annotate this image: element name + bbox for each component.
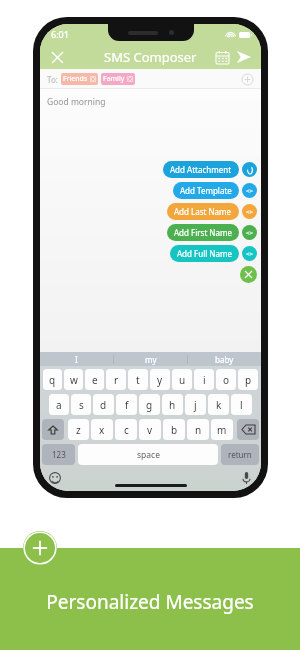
button[interactable]: g — [139, 394, 160, 415]
button[interactable]: y — [150, 369, 170, 390]
button[interactable]: space — [78, 444, 218, 465]
button[interactable]: 123 — [42, 444, 75, 465]
button[interactable]: baby — [188, 352, 261, 366]
button[interactable]: Add — [23, 531, 57, 565]
staticText: j — [194, 398, 197, 412]
button[interactable]: f — [116, 394, 137, 415]
staticText: Friends — [63, 74, 88, 84]
staticText: w — [70, 373, 78, 387]
button[interactable]: s — [71, 394, 91, 415]
staticText: SMS Composer — [104, 48, 197, 66]
button[interactable]: Add Attachment — [163, 161, 257, 178]
button[interactable]: Schedule — [211, 46, 233, 68]
button[interactable]: Family — [103, 74, 133, 84]
button[interactable]: j — [185, 394, 206, 415]
button[interactable]: i — [194, 369, 214, 390]
button[interactable]: v — [139, 419, 161, 440]
staticText: z — [76, 423, 81, 437]
button[interactable]: a — [49, 394, 69, 415]
staticText: d — [100, 398, 107, 412]
button[interactable]: k — [208, 394, 229, 415]
staticText: g — [146, 398, 153, 412]
button[interactable]: r — [106, 369, 126, 390]
staticText: my — [145, 354, 157, 365]
staticText: k — [216, 398, 222, 412]
button[interactable]: n — [187, 419, 209, 440]
staticText: baby — [215, 354, 234, 365]
staticText: q — [49, 373, 56, 387]
button[interactable]: t — [128, 369, 148, 390]
staticText: s — [79, 398, 84, 412]
staticText: v — [147, 423, 153, 437]
button[interactable]: Emoji — [47, 470, 63, 486]
button[interactable]: Personalized Messages — [0, 548, 300, 650]
button[interactable]: h — [162, 394, 183, 415]
staticText: r — [114, 373, 119, 387]
button[interactable]: e — [85, 369, 104, 390]
staticText: To: — [47, 74, 58, 85]
button[interactable]: return — [221, 444, 259, 465]
button[interactable]: Key — [237, 419, 259, 440]
button[interactable]: p — [238, 369, 258, 390]
button[interactable]: o — [216, 369, 236, 390]
button[interactable]: Close — [46, 46, 68, 68]
button[interactable]: l — [231, 394, 252, 415]
button[interactable]: my — [114, 352, 187, 366]
button[interactable]: Add Template — [173, 182, 257, 199]
staticText: h — [169, 398, 176, 412]
button[interactable]: x — [91, 419, 113, 440]
staticText: <> — [246, 187, 253, 195]
staticText: space — [137, 449, 160, 461]
staticText: n — [195, 423, 202, 437]
staticText: e — [92, 373, 98, 387]
staticText: y — [157, 373, 163, 387]
staticText: Add Full Name — [177, 248, 232, 259]
staticText: o — [223, 373, 230, 387]
button[interactable]: Add recipient — [239, 71, 255, 87]
button[interactable]: b — [163, 419, 185, 440]
button[interactable]: Add First Name — [167, 224, 257, 241]
staticText: i — [203, 373, 206, 387]
staticText: <> — [246, 229, 253, 237]
staticText: Add Attachment — [170, 164, 232, 175]
staticText: return — [228, 449, 252, 460]
button[interactable]: q — [43, 369, 62, 390]
button[interactable]: Add Full Name — [170, 245, 257, 262]
staticText: <> — [246, 208, 253, 216]
staticText: u — [179, 373, 186, 387]
staticText: a — [56, 398, 62, 412]
button[interactable]: c — [115, 419, 137, 440]
staticText: Family — [103, 74, 125, 84]
staticText: l — [240, 398, 243, 412]
button[interactable]: I — [40, 352, 113, 366]
staticText: Good morning — [47, 96, 106, 108]
button[interactable]: Send — [233, 46, 255, 68]
staticText: t — [136, 373, 140, 387]
button[interactable]: Dictate — [238, 470, 254, 486]
staticText: Personalized Messages — [46, 589, 254, 615]
button[interactable]: Close panel — [240, 266, 257, 283]
staticText: p — [245, 373, 252, 387]
staticText: Add Last Name — [174, 206, 232, 217]
staticText: f — [125, 398, 129, 412]
staticText: x — [99, 423, 105, 437]
button[interactable]: w — [64, 369, 83, 390]
staticText: I — [75, 354, 78, 365]
button[interactable]: Friends — [63, 74, 96, 84]
staticText: b — [171, 423, 178, 437]
button[interactable]: Key — [42, 419, 64, 440]
button[interactable]: Add Last Name — [167, 203, 257, 220]
button[interactable]: u — [172, 369, 192, 390]
staticText: 123 — [52, 449, 66, 460]
staticText: Add Template — [180, 185, 232, 196]
staticText: <> — [246, 250, 253, 258]
staticText: m — [217, 423, 227, 437]
staticText: 6:01 — [51, 28, 69, 40]
button[interactable]: d — [93, 394, 114, 415]
button[interactable]: z — [68, 419, 89, 440]
staticText: Add First Name — [174, 227, 232, 238]
button[interactable]: m — [211, 419, 233, 440]
staticText: c — [124, 423, 129, 437]
